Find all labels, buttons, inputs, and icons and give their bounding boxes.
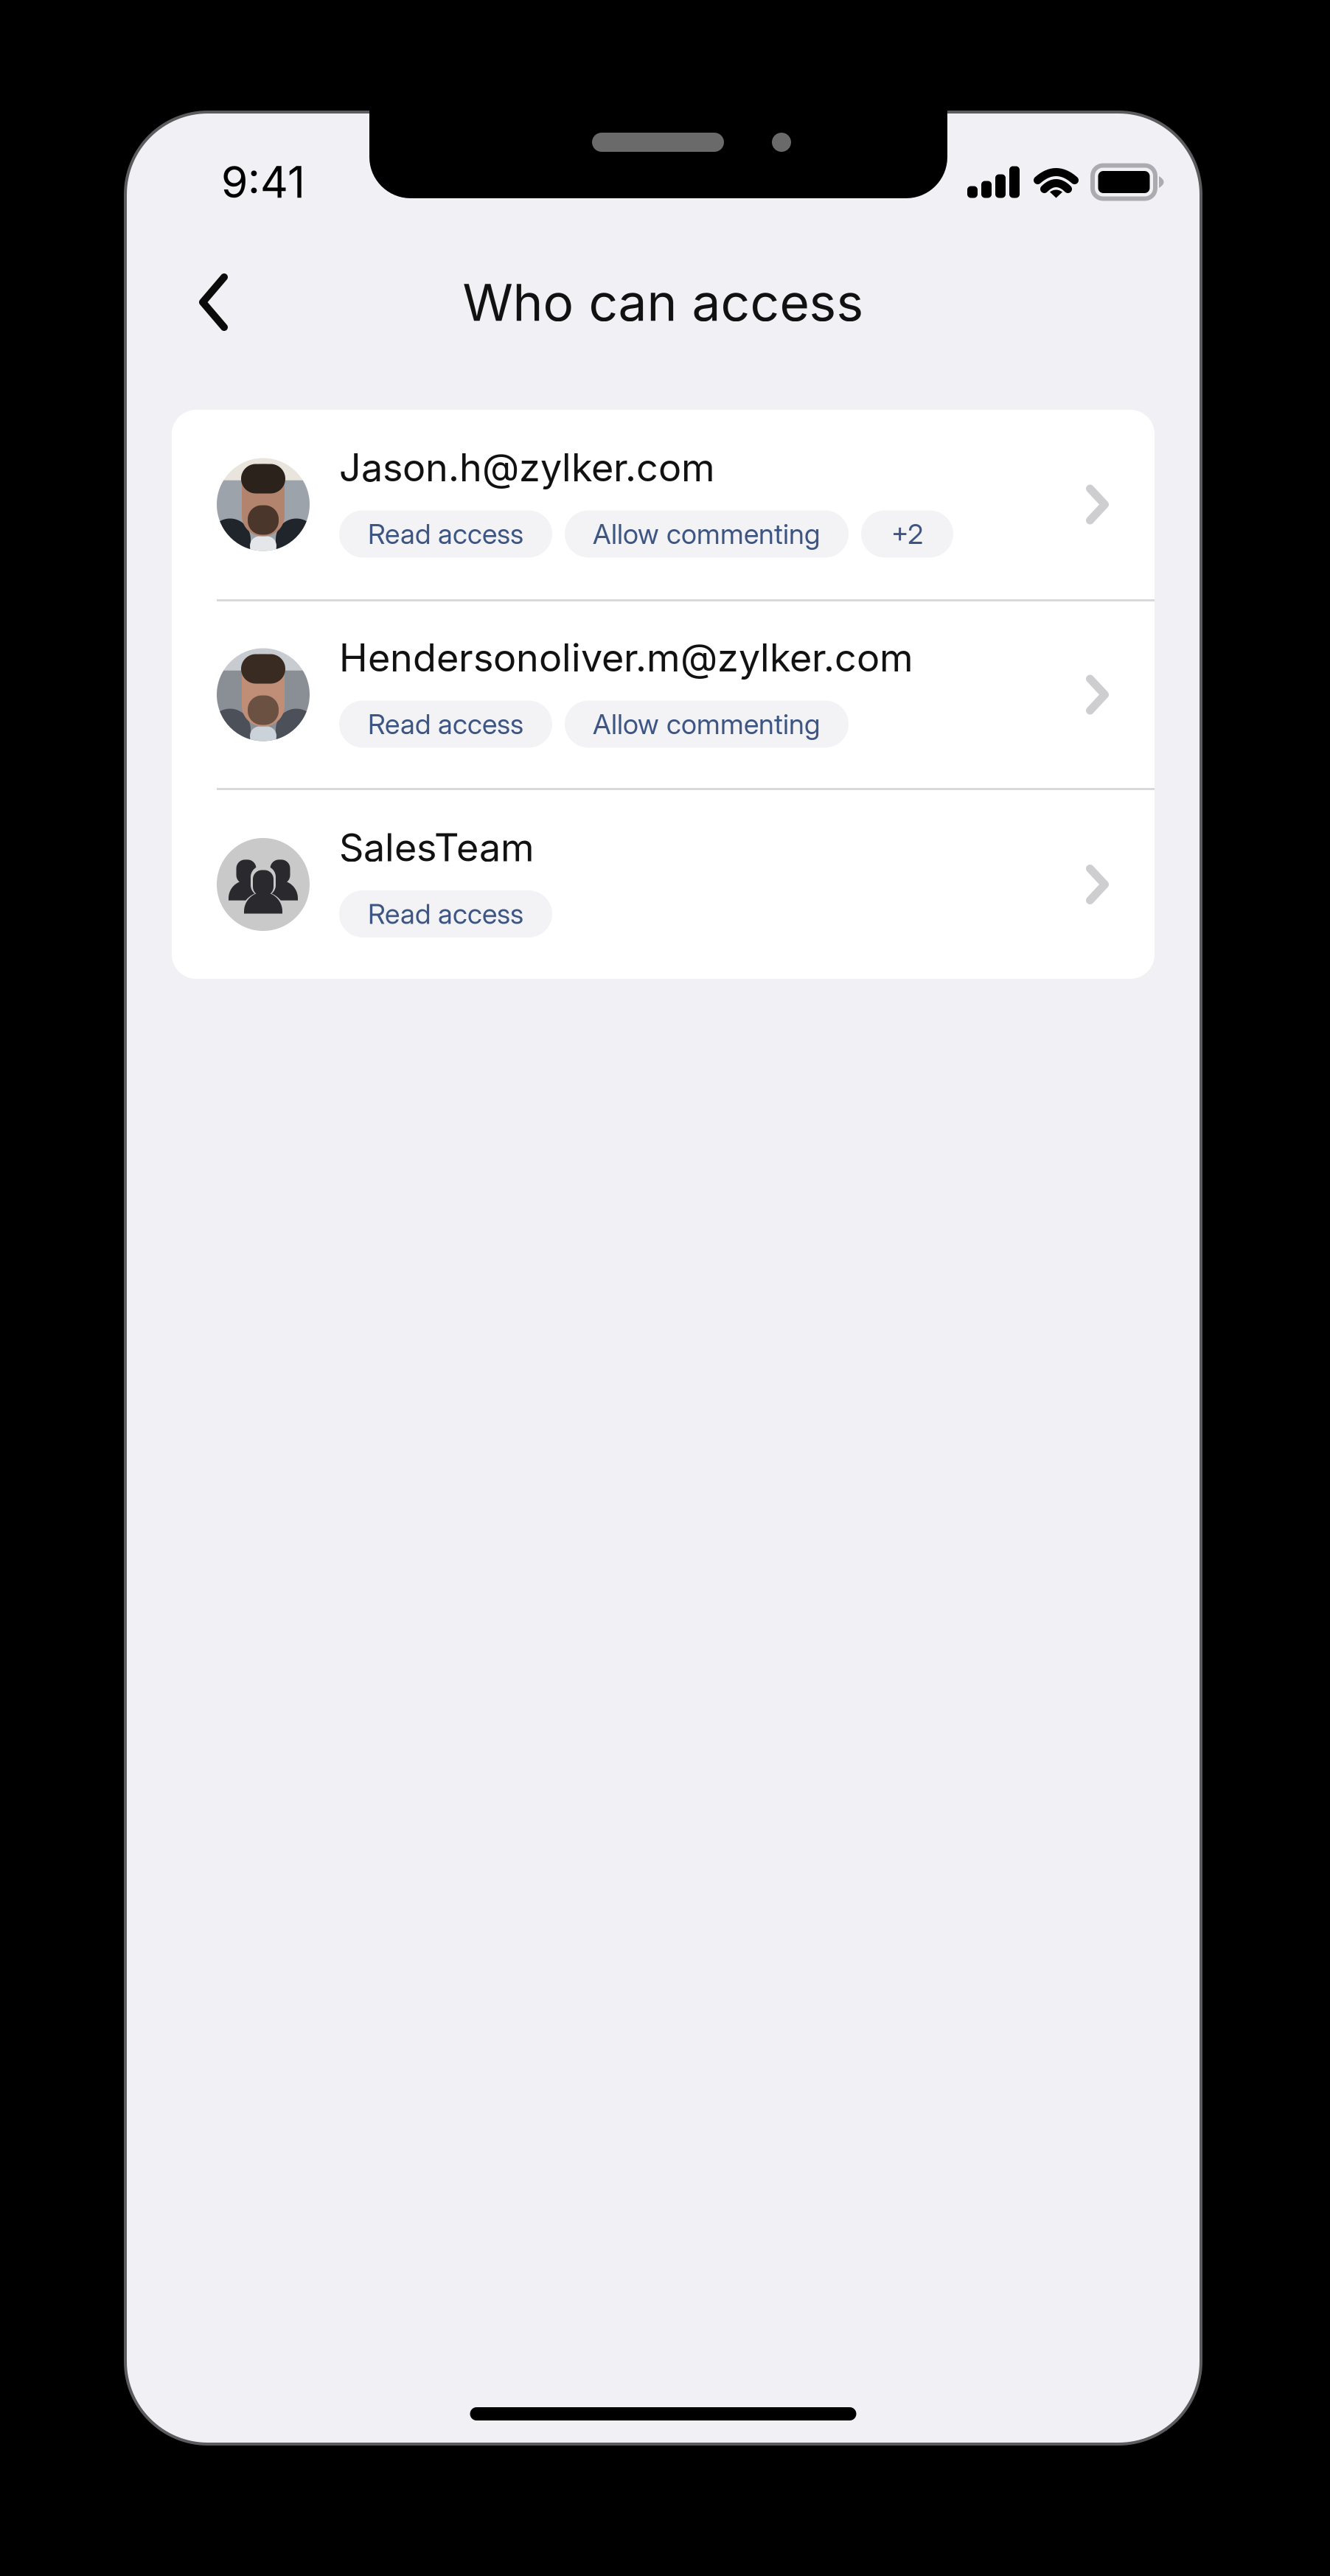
staticText: Read access [368, 897, 523, 931]
button[interactable]: Hendersonoliver.m@zylker.com [172, 601, 1155, 788]
button[interactable]: Jason.h@zylker.com [172, 410, 1155, 599]
button[interactable]: Allow commenting [565, 701, 849, 748]
button[interactable]: Read access [339, 701, 552, 748]
staticText: Who can access [463, 271, 864, 333]
staticText: Allow commenting [593, 517, 821, 551]
button[interactable]: Read access [339, 510, 552, 558]
staticText: Read access [368, 517, 523, 551]
staticText: Hendersonoliver.m@zylker.com [339, 634, 913, 681]
staticText: Jason.h@zylker.com [339, 444, 715, 490]
button[interactable]: SalesTeam [172, 790, 1155, 979]
staticText: Allow commenting [593, 707, 821, 741]
button[interactable]: Back [125, 244, 257, 360]
button[interactable]: Read access [339, 890, 552, 938]
staticText: SalesTeam [339, 824, 535, 870]
button[interactable]: +2 [861, 510, 953, 558]
staticText: Read access [368, 707, 523, 741]
staticText: +2 [891, 517, 923, 551]
staticText: 9:41 [221, 156, 305, 208]
button[interactable]: Allow commenting [565, 510, 849, 558]
